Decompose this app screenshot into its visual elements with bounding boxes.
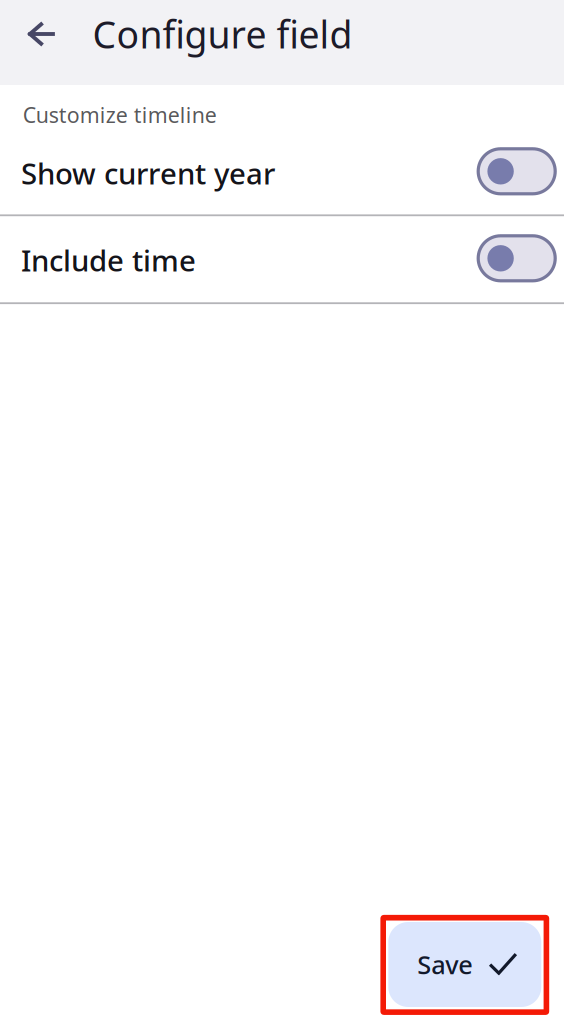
staticText: Save <box>417 948 473 981</box>
button[interactable]: Include time <box>0 216 564 303</box>
button[interactable]: Back <box>13 5 71 63</box>
staticText: Customize timeline <box>23 100 217 129</box>
staticText: Show current year <box>21 153 275 192</box>
staticText: Include time <box>21 240 196 279</box>
button[interactable]: Save <box>388 922 541 1007</box>
button[interactable]: Show current year <box>0 129 564 216</box>
staticText: Configure field <box>92 9 352 59</box>
